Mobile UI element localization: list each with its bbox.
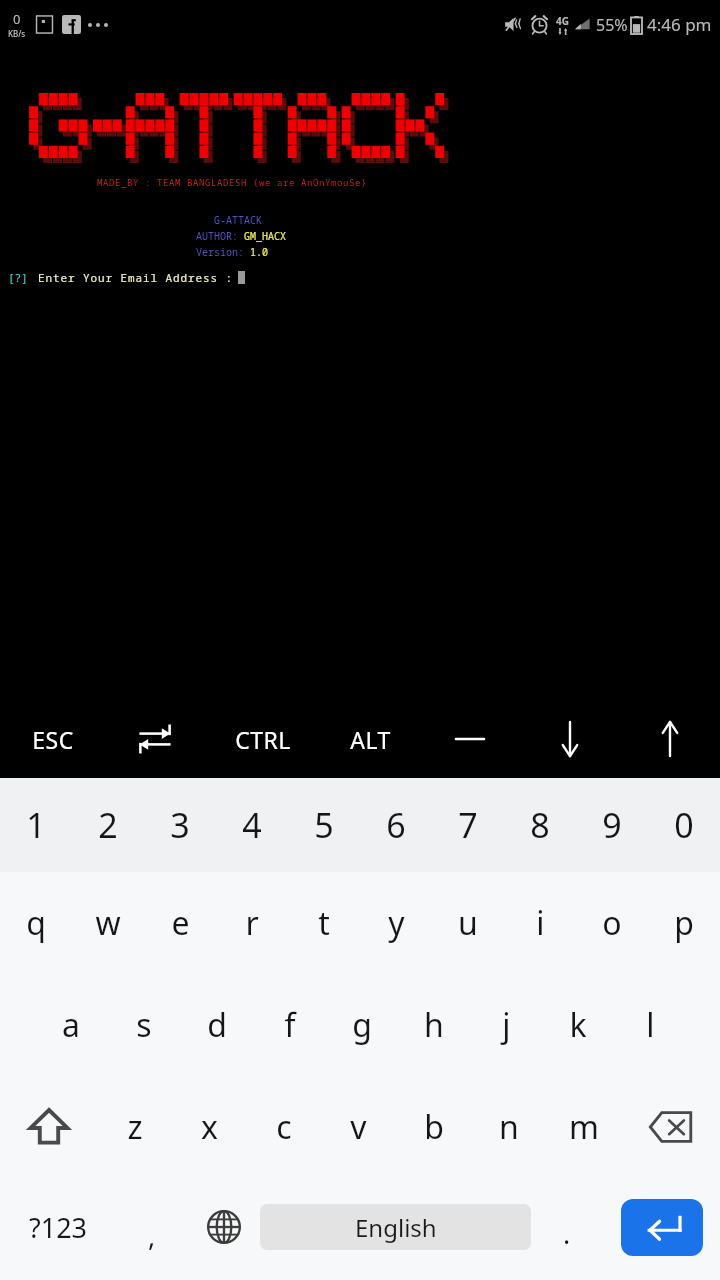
- button[interactable]: CTRL: [205, 700, 320, 778]
- staticText: [?]: [8, 270, 28, 285]
- staticText: v: [350, 1105, 367, 1149]
- staticText: 4:46 pm: [647, 13, 712, 36]
- button[interactable]: ALT: [320, 700, 420, 778]
- button[interactable]: j: [470, 974, 542, 1076]
- button[interactable]: e: [144, 872, 216, 974]
- staticText: t: [318, 901, 330, 945]
- button[interactable]: o: [576, 872, 648, 974]
- button[interactable]: Arrow down: [520, 700, 620, 778]
- staticText: 4G: [556, 14, 569, 28]
- button[interactable]: b: [396, 1076, 471, 1178]
- staticText: 55%: [596, 14, 628, 36]
- button[interactable]: a: [34, 974, 107, 1076]
- button[interactable]: p: [648, 872, 720, 974]
- button[interactable]: 8: [504, 778, 576, 872]
- staticText: j: [502, 1003, 511, 1047]
- button[interactable]: x: [172, 1076, 246, 1178]
- button[interactable]: l: [614, 974, 686, 1076]
- button[interactable]: 2: [72, 778, 144, 872]
- button[interactable]: f: [253, 974, 326, 1076]
- staticText: z: [127, 1105, 143, 1149]
- button[interactable]: n: [471, 1076, 546, 1178]
- button[interactable]: ESC: [0, 700, 105, 778]
- button[interactable]: q: [0, 872, 72, 974]
- button[interactable]: z: [98, 1076, 172, 1178]
- staticText: 9: [602, 802, 622, 848]
- staticText: b: [424, 1105, 444, 1149]
- staticText: GM_HACX: [244, 229, 286, 243]
- staticText: q: [26, 901, 46, 945]
- staticText: a: [62, 1003, 80, 1047]
- button[interactable]: d: [180, 974, 253, 1076]
- button[interactable]: .: [531, 1178, 603, 1276]
- button[interactable]: 5: [288, 778, 360, 872]
- button[interactable]: Backspace: [621, 1076, 720, 1178]
- button[interactable]: 6: [360, 778, 432, 872]
- staticText: n: [499, 1105, 519, 1149]
- staticText: 0: [13, 10, 21, 28]
- staticText: r: [245, 901, 259, 945]
- button[interactable]: 3: [144, 778, 216, 872]
- staticText: o: [602, 901, 622, 945]
- staticText: f: [284, 1003, 296, 1047]
- staticText: e: [171, 901, 190, 945]
- staticText: CTRL: [235, 724, 291, 755]
- staticText: l: [646, 1003, 655, 1047]
- button[interactable]: y: [360, 872, 432, 974]
- staticText: m: [569, 1105, 599, 1149]
- button[interactable]: Tab: [105, 700, 205, 778]
- staticText: G-ATTACK: [214, 213, 262, 227]
- button[interactable]: Change language: [188, 1178, 260, 1276]
- button[interactable]: ,: [116, 1178, 188, 1276]
- button[interactable]: 7: [432, 778, 504, 872]
- button[interactable]: i: [504, 872, 576, 974]
- staticText: s: [136, 1003, 152, 1047]
- staticText: 8: [530, 802, 550, 848]
- staticText: 7: [458, 802, 478, 848]
- staticText: d: [207, 1003, 227, 1047]
- button[interactable]: s: [107, 974, 180, 1076]
- button[interactable]: t: [288, 872, 360, 974]
- button[interactable]: g: [326, 974, 398, 1076]
- staticText: Version:: [196, 245, 250, 259]
- staticText: i: [536, 901, 545, 945]
- staticText: 0: [674, 802, 694, 848]
- staticText: .: [563, 1215, 571, 1252]
- staticText: KB/s: [8, 28, 26, 39]
- staticText: w: [95, 901, 121, 945]
- button[interactable]: Enter: [621, 1199, 703, 1256]
- button[interactable]: m: [546, 1076, 621, 1178]
- button[interactable]: h: [398, 974, 470, 1076]
- button[interactable]: 9: [576, 778, 648, 872]
- staticText: 4: [242, 802, 262, 848]
- button[interactable]: Shift: [0, 1076, 98, 1178]
- staticText: ?123: [29, 1209, 88, 1246]
- staticText: u: [458, 901, 478, 945]
- staticText: k: [569, 1003, 587, 1047]
- button[interactable]: r: [216, 872, 288, 974]
- staticText: 2: [98, 802, 118, 848]
- button[interactable]: 1: [0, 778, 72, 872]
- button[interactable]: Minus: [420, 700, 520, 778]
- button[interactable]: w: [72, 872, 144, 974]
- button[interactable]: Arrow up: [620, 700, 720, 778]
- button[interactable]: English: [260, 1204, 531, 1250]
- staticText: c: [276, 1105, 292, 1149]
- staticText: g: [352, 1003, 372, 1047]
- button[interactable]: u: [432, 872, 504, 974]
- button[interactable]: 0: [648, 778, 720, 872]
- button[interactable]: 4: [216, 778, 288, 872]
- staticText: MADE_BY : TEAM BANGLADESH {we are AnOnYm…: [97, 176, 368, 188]
- staticText: 3: [170, 802, 190, 848]
- staticText: y: [388, 901, 405, 945]
- staticText: 1.0: [250, 245, 268, 259]
- button[interactable]: ?123: [0, 1178, 116, 1276]
- button[interactable]: v: [321, 1076, 396, 1178]
- button[interactable]: k: [542, 974, 614, 1076]
- staticText: ALT: [350, 724, 391, 755]
- button[interactable]: c: [246, 1076, 321, 1178]
- staticText: Enter Your Email Address :: [38, 270, 233, 285]
- staticText: English: [355, 1211, 437, 1244]
- staticText: p: [674, 901, 694, 945]
- staticText: AUTHOR:: [196, 229, 244, 243]
